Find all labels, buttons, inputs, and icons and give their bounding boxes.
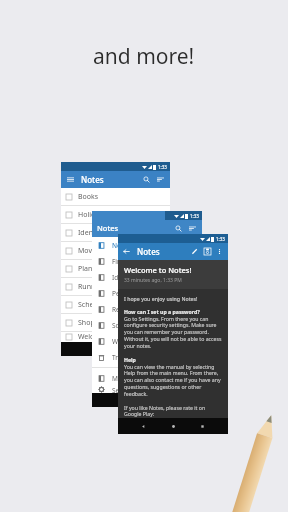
- button[interactable]: Plans: [61, 260, 170, 277]
- staticText: Notes: [81, 174, 104, 185]
- button[interactable]: Work: [92, 333, 165, 349]
- staticText: Settings: [112, 386, 137, 393]
- staticText: 1:33: [190, 213, 199, 219]
- button[interactable]: Notes: [92, 237, 165, 253]
- staticText: Manage labels: [112, 374, 157, 383]
- staticText: School: [112, 321, 133, 330]
- staticText: Books: [78, 192, 99, 202]
- staticText: If you like Notes, please rate it on Goo…: [124, 404, 223, 418]
- staticText: Notes: [97, 223, 119, 233]
- button[interactable]: Back: [122, 247, 131, 256]
- staticText: I hope you enjoy using Notes!: [124, 295, 198, 302]
- button[interactable]: Recipes: [92, 301, 165, 317]
- staticText: and more!: [93, 42, 195, 71]
- staticText: Welcome to Notes!: [78, 332, 140, 342]
- staticText: Schedule: [78, 300, 108, 310]
- button[interactable]: Sort: [188, 224, 197, 233]
- staticText: Plans: [78, 264, 96, 274]
- staticText: 1:33: [158, 164, 167, 170]
- button[interactable]: Edit: [190, 247, 199, 256]
- button[interactable]: Back: [140, 423, 147, 430]
- button[interactable]: Home: [170, 423, 177, 430]
- staticText: You can view the manual by selecting Hel…: [124, 363, 223, 398]
- button[interactable]: Books: [61, 188, 170, 205]
- staticText: Personal: [112, 289, 139, 298]
- staticText: Go to Settings. From there you can confi…: [124, 315, 223, 350]
- staticText: Movies: [78, 246, 102, 256]
- staticText: Recipes: [112, 305, 136, 314]
- button[interactable]: Manage labels: [92, 370, 165, 386]
- button[interactable]: Trash: [92, 349, 165, 365]
- button[interactable]: Ideas: [92, 269, 165, 285]
- staticText: Shopping: [78, 318, 110, 328]
- staticText: 33 minutes ago, 1:33 PM: [124, 277, 182, 284]
- button[interactable]: Financial: [92, 253, 165, 269]
- staticText: Running: [78, 282, 106, 292]
- staticText: Trash: [112, 353, 129, 362]
- staticText: Help: [124, 356, 136, 363]
- button[interactable]: Save: [203, 247, 212, 256]
- staticText: Holiday: [78, 210, 103, 220]
- button[interactable]: Personal: [92, 285, 165, 301]
- button[interactable]: Running: [61, 278, 170, 295]
- button[interactable]: Identity: [61, 224, 170, 241]
- button[interactable]: Sort: [156, 175, 165, 184]
- staticText: Identity: [78, 228, 104, 238]
- button[interactable]: Recent apps: [199, 423, 206, 430]
- button[interactable]: School: [92, 317, 165, 333]
- staticText: Notes: [137, 246, 160, 257]
- button[interactable]: Holiday: [61, 206, 170, 223]
- button[interactable]: Search: [174, 224, 183, 233]
- staticText: 1:33: [216, 236, 225, 242]
- staticText: Ideas: [112, 273, 129, 282]
- button[interactable]: Shopping: [61, 314, 170, 331]
- button[interactable]: Search: [142, 175, 151, 184]
- button[interactable]: Open navigation drawer: [66, 175, 75, 184]
- staticText: Notes: [112, 241, 131, 250]
- button[interactable]: Schedule: [61, 296, 170, 313]
- button[interactable]: Movies: [61, 242, 170, 259]
- staticText: How can I set up a password?: [124, 308, 200, 315]
- button[interactable]: Settings: [92, 386, 165, 393]
- button[interactable]: More options: [215, 247, 224, 256]
- staticText: Financial: [112, 257, 139, 266]
- staticText: Work: [112, 337, 129, 346]
- button[interactable]: Welcome to Notes!: [61, 332, 170, 342]
- staticText: Welcome to Notes!: [124, 265, 192, 275]
